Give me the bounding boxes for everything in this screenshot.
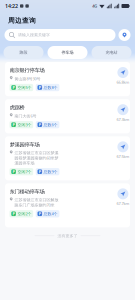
button[interactable]: Locate me	[118, 29, 130, 41]
button[interactable]: 虎踞桥	[5, 99, 130, 133]
staticText: 总数4个	[44, 211, 58, 216]
staticText: P	[13, 85, 15, 90]
button[interactable]: 停车场	[47, 46, 87, 59]
staticText: 空闲7个	[17, 169, 31, 174]
staticText: 总数9个	[44, 169, 58, 174]
button[interactable]: 梦溪园停车场	[5, 136, 130, 180]
staticText: 空闲3个	[17, 122, 31, 127]
staticText: 空闲5个	[17, 85, 31, 90]
staticText: 停车场	[61, 50, 73, 55]
staticText: 67.7km	[116, 201, 129, 206]
staticText: P	[39, 169, 41, 174]
staticText: P	[39, 122, 41, 127]
staticText: 4G	[92, 3, 97, 9]
staticText: 东门移动停车场	[9, 188, 44, 195]
staticText: 总数8个	[44, 85, 58, 90]
staticText: 虎踞桥	[9, 104, 24, 111]
staticText: 黄山路8号30号	[14, 76, 40, 81]
staticText: 没有更多了	[57, 233, 77, 238]
button[interactable]: 路段	[3, 46, 43, 59]
staticText: 梦溪园停车场	[9, 141, 39, 148]
button[interactable]: 充电站	[91, 46, 131, 59]
staticText: 南京银行停车场	[9, 67, 44, 74]
staticText: P	[13, 211, 15, 216]
staticText: 路段	[19, 50, 27, 55]
staticText: P	[13, 122, 15, 127]
button[interactable]: 东门移动停车场	[5, 183, 130, 227]
staticText: 67.3km	[116, 117, 129, 122]
staticText: 67.5km	[116, 154, 129, 159]
staticText: 空闲2个	[17, 211, 31, 216]
staticText: P	[13, 169, 15, 174]
staticText: 江苏省镇江市京口区梦溪园巷梦溪园南侧约60米梦溪园停车场	[14, 150, 58, 165]
staticText: 14:22	[5, 2, 18, 10]
staticText: 总数6个	[44, 122, 58, 127]
button[interactable]: 南京银行停车场	[5, 62, 130, 96]
staticText: P	[39, 211, 41, 216]
staticText: 66.8km	[116, 79, 129, 85]
staticText: 周边查询	[8, 16, 36, 25]
staticText: 南门大街6号	[14, 113, 36, 118]
staticText: 充电站	[105, 50, 117, 55]
staticText: P	[39, 85, 41, 90]
staticText: 江苏省镇江市京口区解放路东门广场东侧约70米	[14, 197, 58, 208]
staticText: 请输入搜索关键字	[18, 32, 50, 37]
